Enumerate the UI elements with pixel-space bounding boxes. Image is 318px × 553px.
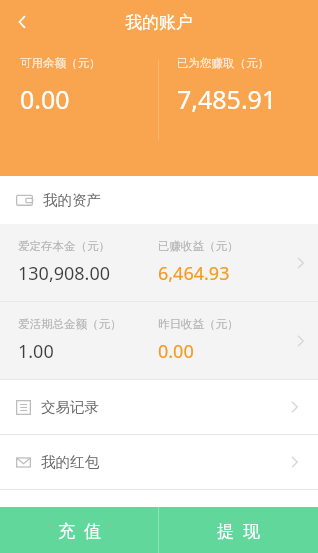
staticText: 昨日收益（元）: [158, 317, 239, 331]
staticText: 可用余额（元）: [20, 56, 101, 70]
staticText: 已赚收益（元）: [158, 239, 239, 253]
button[interactable]: 提 现: [159, 507, 318, 553]
staticText: 0.00: [20, 82, 70, 116]
staticText: 130,908.00: [18, 261, 111, 286]
staticText: 充 值: [58, 519, 101, 542]
button[interactable]: 交易记录: [0, 380, 318, 434]
staticText: 爱活期总金额（元）: [18, 317, 122, 331]
staticText: 6,464.93: [158, 261, 230, 286]
staticText: 爱定存本金（元）: [18, 239, 110, 253]
staticText: 提 现: [217, 519, 260, 542]
staticText: 我的资产: [43, 191, 101, 209]
button[interactable]: 我的资产: [0, 176, 318, 224]
button[interactable]: 爱活期总金额（元）: [0, 302, 318, 379]
staticText: 已为您赚取（元）: [177, 56, 269, 70]
staticText: 交易记录: [41, 398, 99, 416]
button[interactable]: 我的红包: [0, 435, 318, 489]
button[interactable]: Back: [0, 0, 44, 44]
staticText: 0.00: [158, 339, 194, 364]
staticText: 1.00: [18, 339, 54, 364]
staticText: 我的红包: [41, 453, 99, 471]
button[interactable]: 充 值: [0, 507, 158, 553]
staticText: 7,485.91: [177, 82, 277, 116]
button[interactable]: 爱定存本金（元）: [0, 224, 318, 301]
staticText: 我的账户: [125, 12, 193, 33]
